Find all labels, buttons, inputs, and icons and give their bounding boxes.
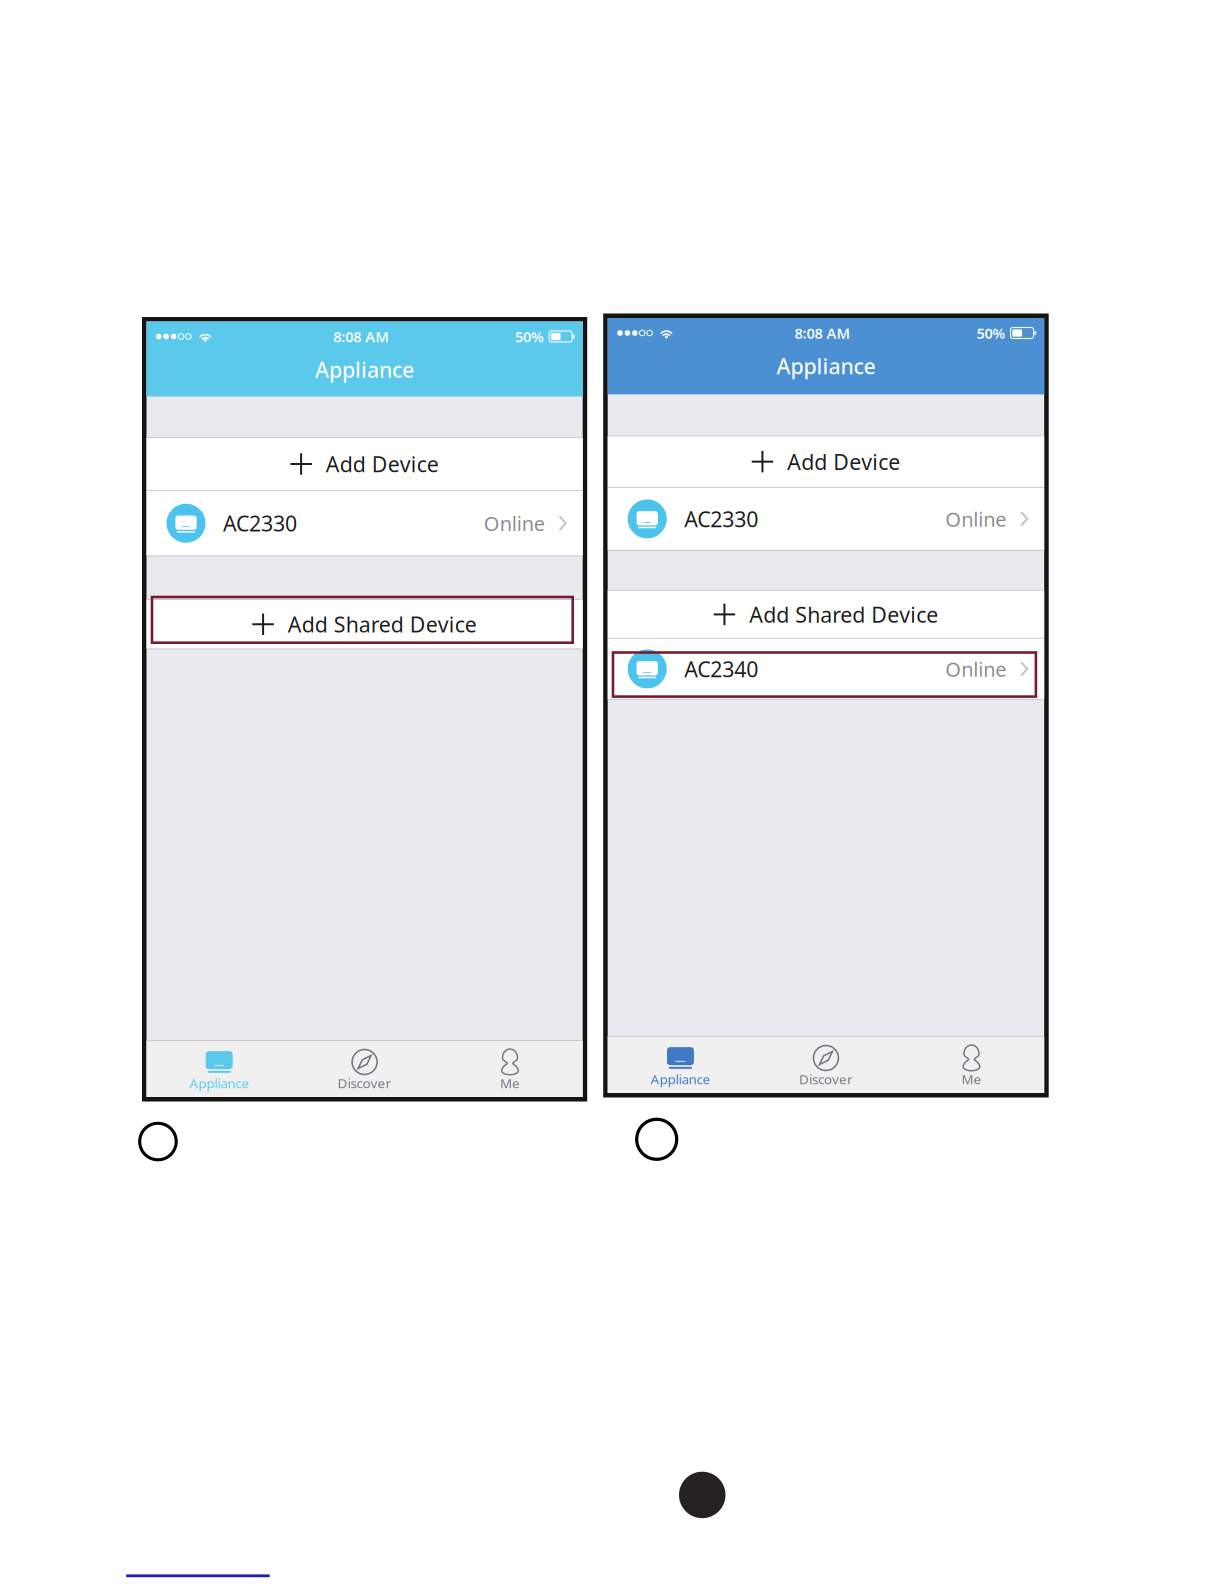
button[interactable]: Add Shared Device bbox=[146, 600, 583, 648]
staticText: Add Shared Device bbox=[288, 610, 477, 638]
button[interactable]: Add Device bbox=[608, 436, 1044, 487]
staticText: Discover bbox=[799, 1070, 853, 1088]
staticText: Online bbox=[484, 510, 545, 537]
staticText: 8:08 AM bbox=[794, 323, 850, 343]
staticText: Appliance bbox=[650, 1070, 710, 1088]
staticText: Online bbox=[945, 656, 1006, 682]
staticText: AC2330 bbox=[684, 505, 758, 533]
staticText: 50% bbox=[977, 323, 1006, 343]
staticText: Appliance bbox=[189, 1074, 249, 1092]
staticText: Appliance bbox=[315, 355, 414, 384]
button[interactable]: Discover bbox=[753, 1037, 899, 1093]
staticText: Add Shared Device bbox=[749, 600, 938, 628]
staticText: Me bbox=[500, 1074, 520, 1092]
button[interactable]: Appliance bbox=[146, 1041, 292, 1097]
button[interactable]: AC2330 bbox=[146, 491, 583, 555]
button[interactable]: Me bbox=[437, 1041, 583, 1097]
staticText: AC2330 bbox=[223, 509, 297, 537]
staticText: 8:08 AM bbox=[333, 327, 389, 346]
button[interactable]: AC2340 bbox=[608, 639, 1044, 699]
button[interactable]: Discover bbox=[292, 1041, 437, 1097]
button[interactable]: Add Shared Device bbox=[608, 591, 1044, 638]
staticText: Add Device bbox=[326, 450, 439, 478]
staticText: Appliance bbox=[776, 352, 875, 380]
button[interactable]: Me bbox=[899, 1037, 1044, 1093]
staticText: 50% bbox=[515, 327, 544, 346]
button[interactable]: Add Device bbox=[146, 438, 583, 490]
button[interactable]: Appliance bbox=[608, 1037, 753, 1093]
staticText: Me bbox=[961, 1070, 981, 1088]
staticText: Add Device bbox=[787, 447, 900, 476]
staticText: Discover bbox=[338, 1074, 392, 1092]
staticText: Online bbox=[945, 506, 1006, 532]
staticText: AC2340 bbox=[684, 655, 758, 683]
button[interactable]: AC2330 bbox=[608, 488, 1044, 550]
